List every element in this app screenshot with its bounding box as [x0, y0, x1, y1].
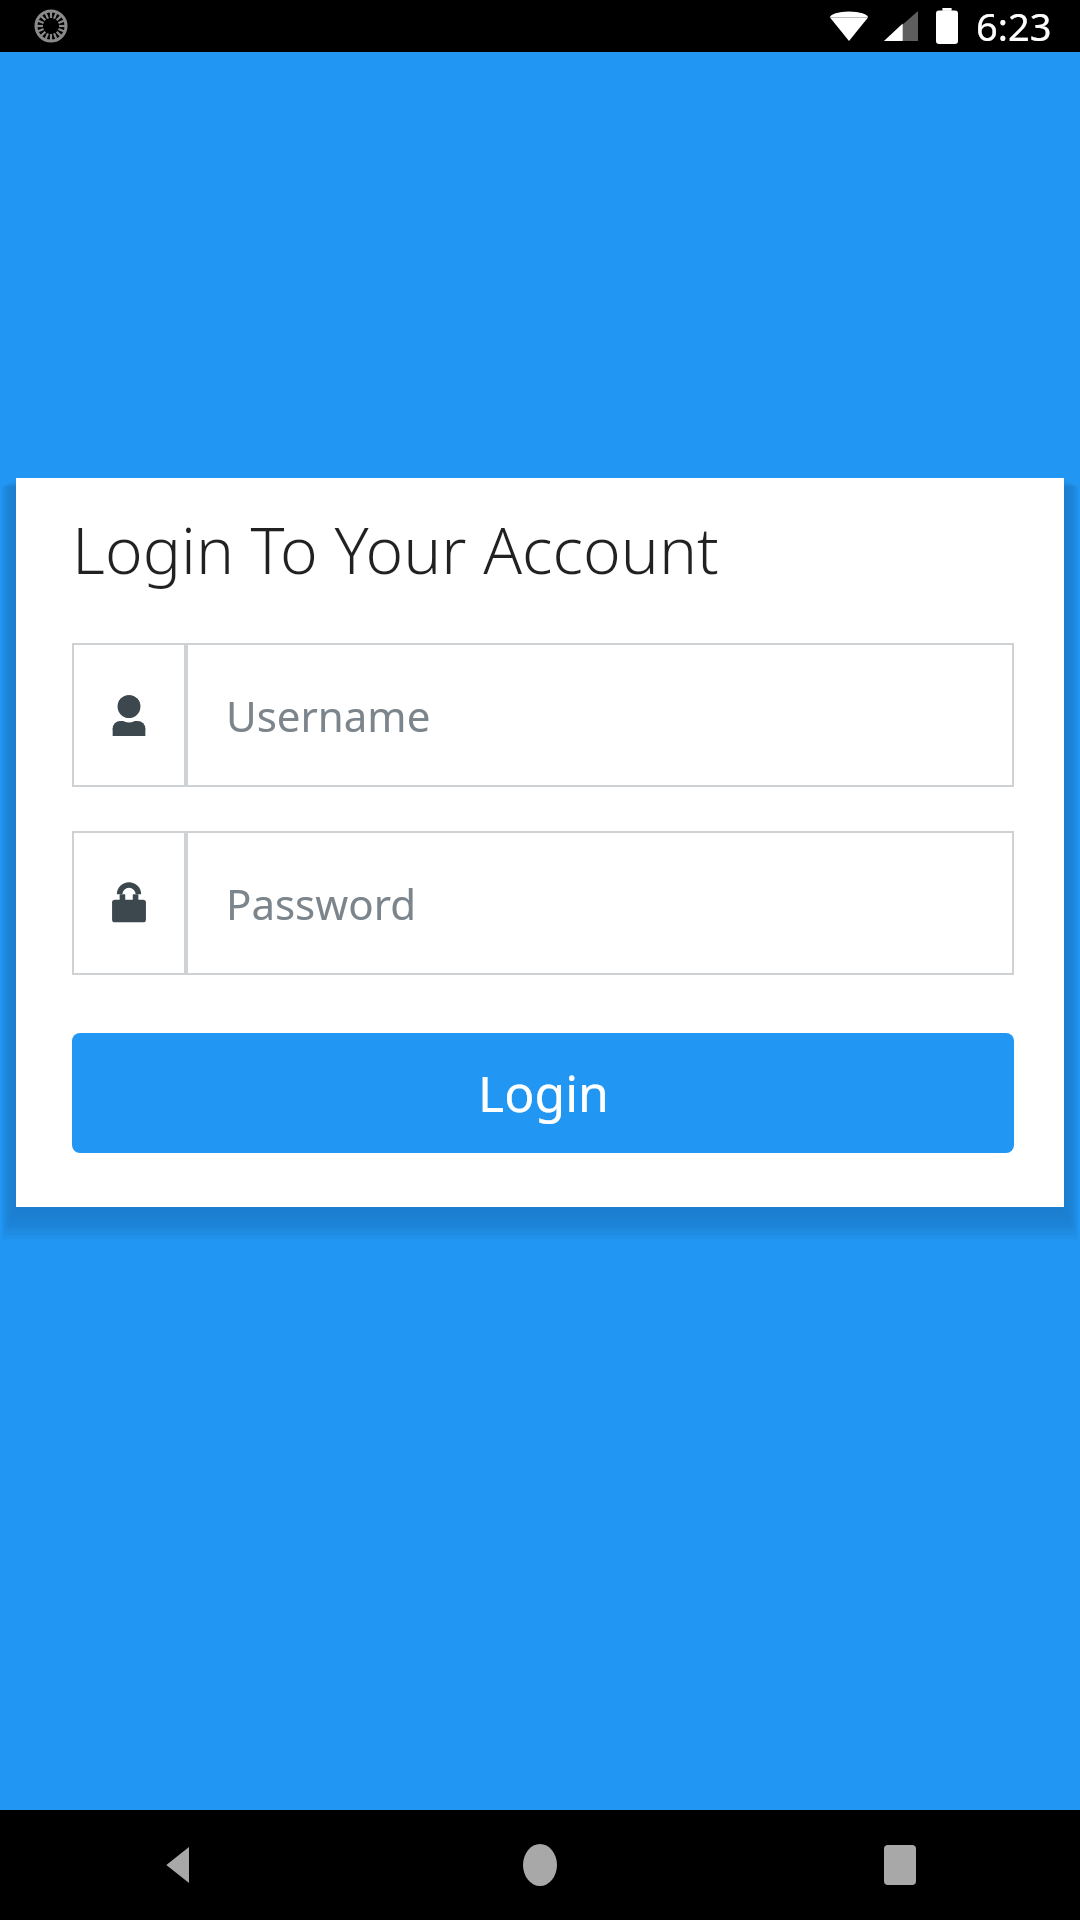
other: Password — [111, 882, 147, 924]
button[interactable]: Back — [90, 1810, 270, 1920]
staticText: 6:23 — [976, 0, 1052, 52]
staticText: Login — [478, 1059, 609, 1127]
button[interactable]: Username — [72, 643, 1014, 787]
other: Username — [110, 694, 148, 736]
button[interactable]: Login — [72, 1033, 1014, 1153]
staticText: Password — [226, 875, 416, 932]
button[interactable]: Password — [72, 831, 1014, 975]
staticText: Login To Your Account — [72, 506, 719, 593]
button[interactable]: Home — [450, 1810, 630, 1920]
button[interactable]: Recent apps — [810, 1810, 990, 1920]
staticText: Username — [226, 687, 431, 744]
